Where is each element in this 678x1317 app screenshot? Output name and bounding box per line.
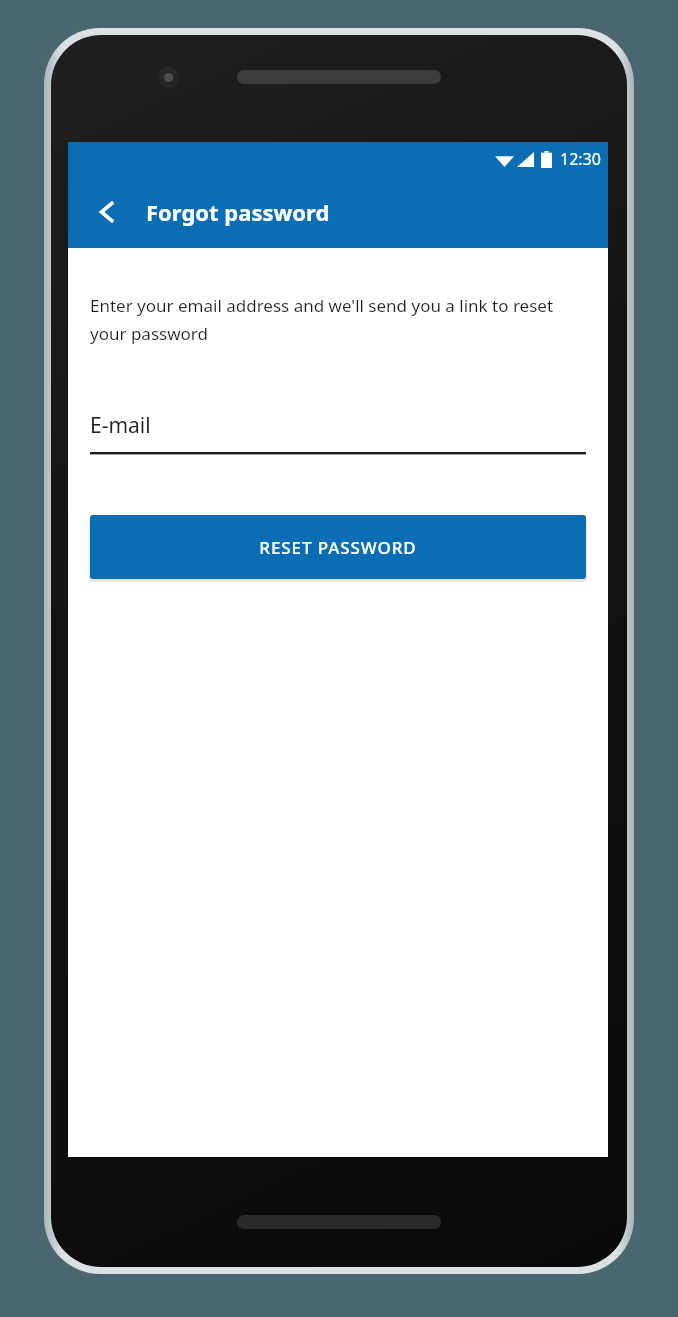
staticText: Forgot password (146, 197, 330, 227)
button[interactable]: E-mail (90, 401, 586, 455)
button[interactable]: Back (80, 185, 134, 239)
button[interactable]: RESET PASSWORD (90, 515, 586, 579)
staticText: E-mail (90, 411, 151, 440)
staticText: RESET PASSWORD (259, 536, 417, 559)
staticText: 12:30 (560, 148, 601, 170)
staticText: Enter your email address and we'll send … (90, 294, 584, 345)
